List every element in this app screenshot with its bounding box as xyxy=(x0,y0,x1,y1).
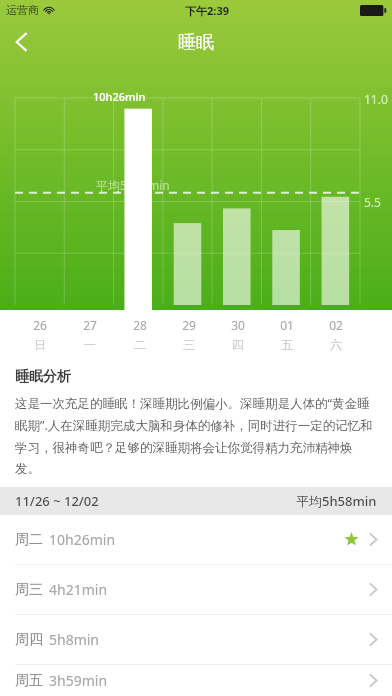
button[interactable]: 周二 xyxy=(0,515,392,565)
staticText: 10h26min xyxy=(49,530,116,549)
staticText: 28 xyxy=(133,317,147,333)
staticText: 11.0 xyxy=(364,91,388,107)
staticText: 六 xyxy=(330,337,342,352)
staticText: 周二 xyxy=(15,531,43,549)
staticText: 一 xyxy=(84,337,96,352)
staticText: 睡眠分析 xyxy=(15,368,71,386)
staticText: 27 xyxy=(83,317,97,333)
staticText: 3h59min xyxy=(49,671,108,690)
staticText: 这是一次充足的睡眠！深睡期比例偏小。深睡期是人体的“黄金睡眠期”.人在深睡期完成… xyxy=(15,395,377,476)
staticText: 二 xyxy=(134,337,146,352)
staticText: 五 xyxy=(281,337,293,352)
staticText: 26 xyxy=(33,317,47,333)
staticText: 平均5h58min xyxy=(296,492,377,510)
staticText: 周三 xyxy=(15,581,43,599)
staticText: 运营商 xyxy=(6,3,39,17)
staticText: 周四 xyxy=(15,631,43,649)
button[interactable]: 周四 xyxy=(0,615,392,665)
staticText: 四 xyxy=(232,337,244,352)
staticText: 三 xyxy=(183,337,195,352)
staticText: 5.5 xyxy=(364,194,381,210)
staticText: 日 xyxy=(34,337,46,352)
staticText: 平均5h58min xyxy=(96,177,170,193)
staticText: 5h8min xyxy=(49,630,100,649)
staticText: 29 xyxy=(182,317,196,333)
staticText: 02 xyxy=(329,317,343,333)
staticText: 01 xyxy=(280,317,294,333)
button[interactable]: 周五 xyxy=(0,665,392,696)
button[interactable]: Back xyxy=(0,20,44,64)
staticText: 下午2:39 xyxy=(185,3,229,18)
staticText: 10h26min xyxy=(93,89,146,104)
staticText: 周五 xyxy=(15,672,43,690)
staticText: 4h21min xyxy=(49,580,108,599)
staticText: 睡眠 xyxy=(178,31,214,54)
staticText: 11/26 ~ 12/02 xyxy=(15,492,99,510)
staticText: 30 xyxy=(231,317,245,333)
button[interactable]: 周三 xyxy=(0,565,392,615)
